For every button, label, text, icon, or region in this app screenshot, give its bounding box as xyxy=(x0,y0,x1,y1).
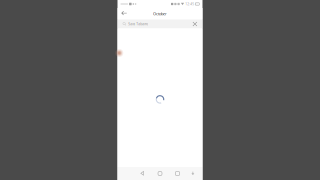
button[interactable]: Clear search xyxy=(192,21,198,27)
staticText: October xyxy=(153,11,167,16)
button[interactable]: Hide keyboard xyxy=(189,169,197,177)
button[interactable]: Home xyxy=(156,169,164,177)
staticText: 12:45 xyxy=(185,2,194,6)
staticText: Sara Tabarro xyxy=(128,22,148,26)
button[interactable]: Recent apps xyxy=(173,169,181,177)
button[interactable]: Back xyxy=(138,169,146,177)
button[interactable]: Back xyxy=(119,8,129,19)
